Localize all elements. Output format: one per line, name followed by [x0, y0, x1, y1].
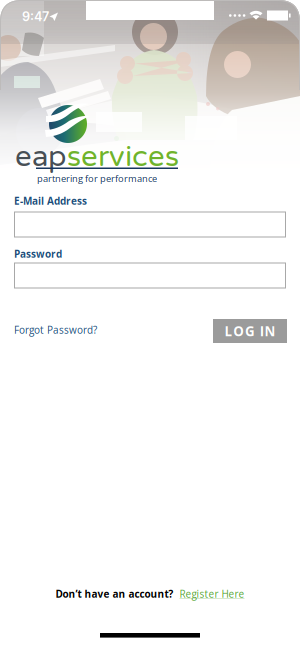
staticText: eap	[15, 139, 67, 174]
staticText: LOG IN	[224, 322, 275, 340]
staticText: partnering for performance	[37, 172, 157, 185]
staticText: Don’t have an account?	[55, 587, 173, 601]
staticText: Password	[14, 247, 62, 261]
button[interactable]: LOG IN	[213, 319, 287, 343]
staticText: 9:47	[22, 9, 49, 24]
button[interactable]: Register Here	[179, 587, 244, 601]
staticText: Register Here	[179, 587, 244, 601]
staticText: E-Mail Address	[14, 194, 87, 208]
button[interactable]: Forgot Password?	[14, 323, 97, 337]
staticText: Forgot Password?	[14, 323, 97, 337]
staticText: services	[67, 139, 179, 174]
